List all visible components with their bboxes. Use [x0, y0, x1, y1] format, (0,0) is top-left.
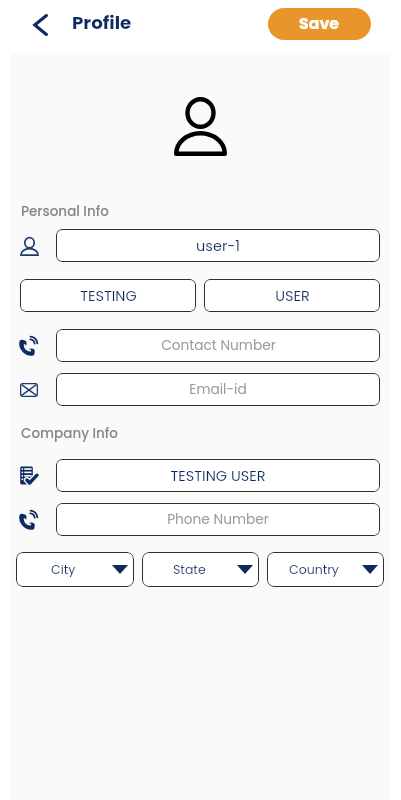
staticText: Country [289, 561, 339, 578]
button[interactable]: USER [204, 279, 380, 312]
staticText: State [173, 561, 206, 578]
button[interactable]: City [16, 552, 134, 587]
staticText: user-1 [196, 236, 240, 256]
staticText: Email-id [189, 380, 247, 399]
staticText: TESTING [80, 286, 137, 306]
button[interactable]: Phone Number [56, 503, 380, 536]
staticText: City [51, 561, 76, 578]
staticText: Company Info [21, 424, 118, 443]
staticText: Profile [72, 10, 132, 35]
button[interactable]: TESTING [20, 279, 196, 312]
staticText: Phone Number [167, 510, 269, 529]
button[interactable]: user-1 [56, 229, 380, 262]
button[interactable]: Contact Number [56, 329, 380, 362]
button[interactable]: Back [24, 9, 56, 41]
staticText: TESTING USER [170, 466, 266, 486]
staticText: Save [299, 12, 340, 34]
button[interactable]: TESTING USER [56, 459, 380, 492]
button[interactable]: Country [267, 552, 384, 587]
button[interactable]: State [142, 552, 259, 587]
staticText: Contact Number [161, 336, 276, 355]
staticText: USER [275, 286, 310, 306]
button[interactable]: Email-id [56, 373, 380, 406]
staticText: Personal Info [21, 202, 109, 221]
button[interactable]: Save [268, 8, 371, 40]
